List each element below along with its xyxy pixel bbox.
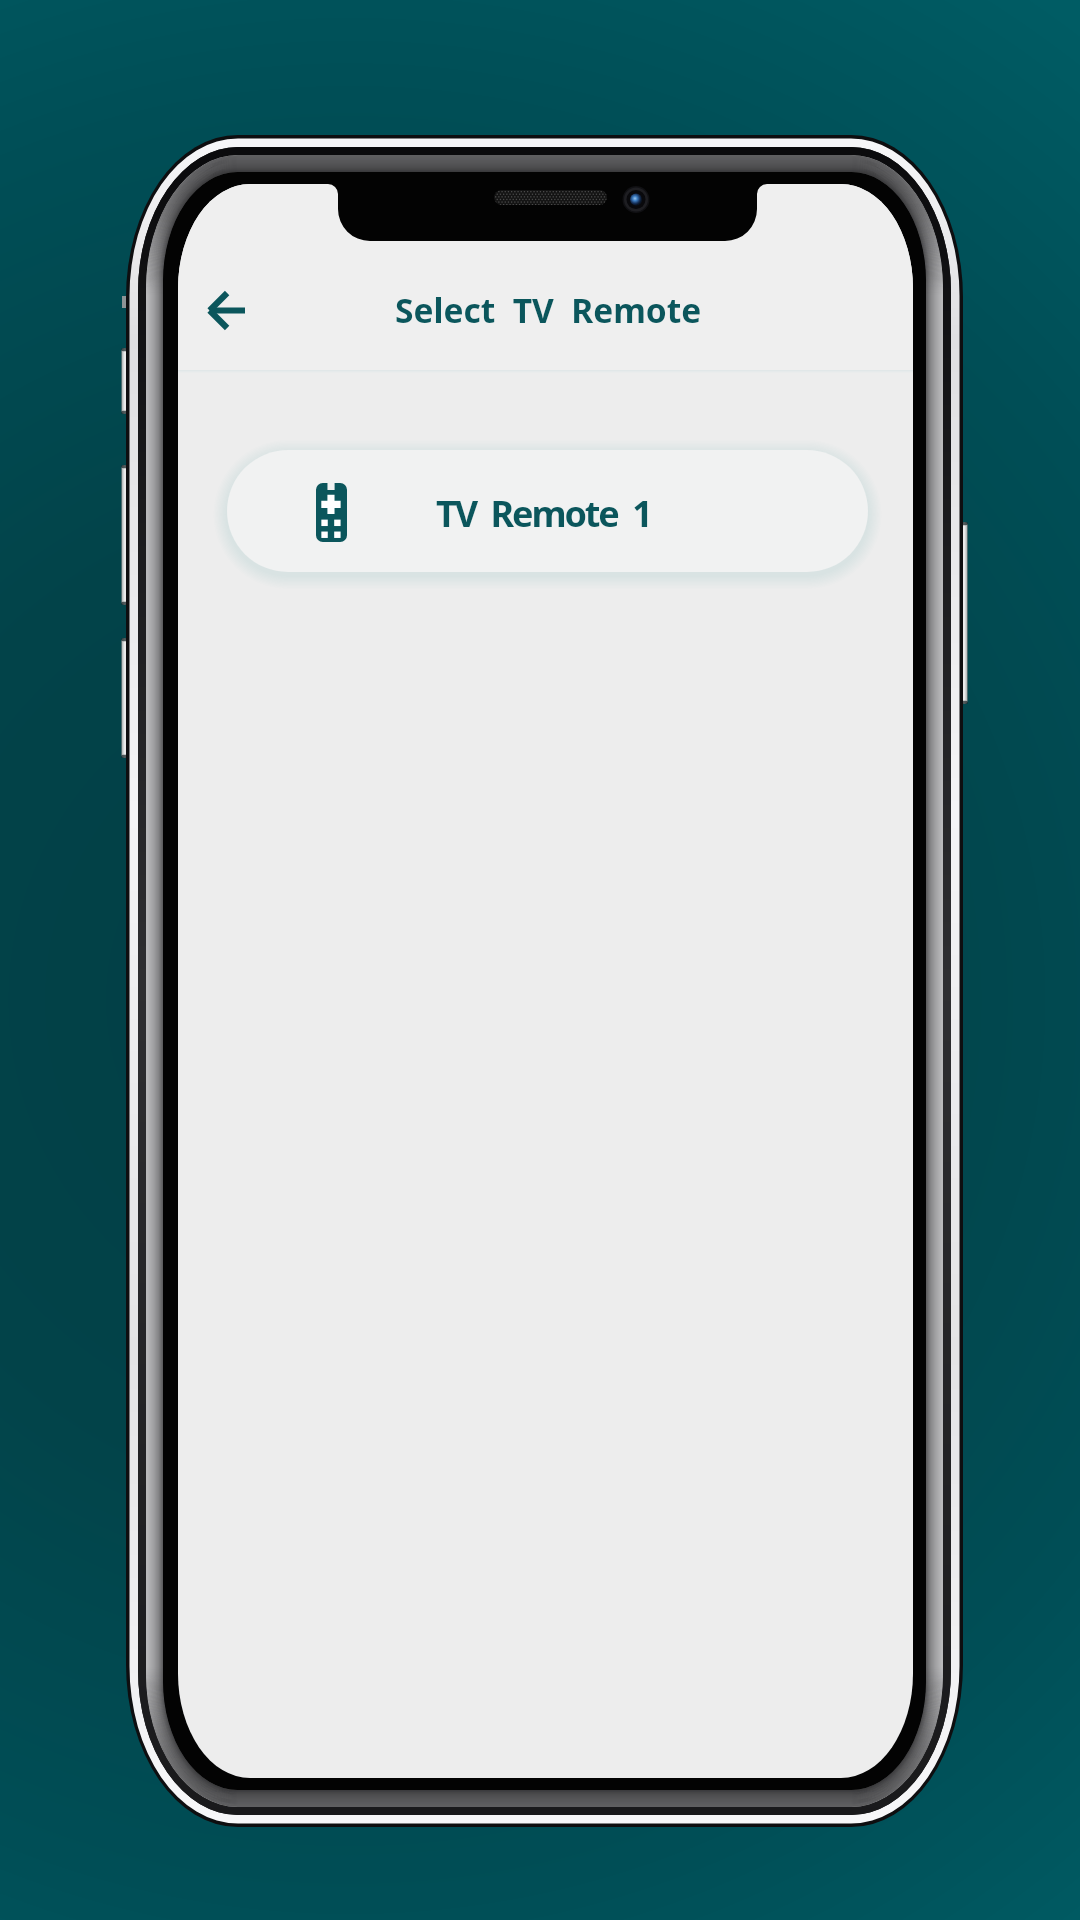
staticText: TV Remote 1 (436, 489, 651, 538)
button[interactable]: Back (182, 266, 270, 354)
button[interactable]: TV Remote 1 (227, 450, 868, 572)
staticText: Select TV Remote (395, 287, 702, 333)
